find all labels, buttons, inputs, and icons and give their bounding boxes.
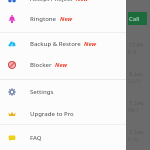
staticText: New: [76, 0, 89, 3]
staticText: 6 d.: [128, 48, 138, 56]
staticText: 12:11: [128, 77, 143, 85]
staticText: 8. Jan.: [129, 70, 145, 77]
staticText: Blocker: [30, 61, 52, 69]
staticText: New: [60, 15, 73, 23]
staticText: New: [84, 40, 97, 48]
staticText: Ringtone: [30, 15, 57, 23]
staticText: Upgrade to Pro: [30, 110, 74, 118]
staticText: 0 m.: [128, 135, 140, 143]
staticText: 3. Jan.: [129, 128, 145, 135]
staticText: Backup & Restore: [30, 40, 81, 48]
button[interactable]: Backup & Restore: [0, 33, 126, 55]
staticText: New: [55, 61, 68, 69]
staticText: 7. Jan.: [129, 99, 145, 106]
button[interactable]: FAQ: [0, 127, 126, 149]
staticText: 08:1: [128, 106, 140, 114]
button[interactable]: Ringtone: [0, 8, 126, 30]
staticText: Settings: [30, 88, 54, 96]
staticText: 17:44: [129, 41, 143, 48]
button[interactable]: Settings: [0, 81, 126, 103]
button[interactable]: Accept / Reject: [0, 0, 126, 10]
staticText: Call: [129, 15, 140, 23]
staticText: Accept / Reject: [30, 0, 73, 3]
staticText: FAQ: [30, 134, 42, 142]
button[interactable]: Blocker: [0, 54, 126, 76]
button[interactable]: Upgrade to Pro: [0, 103, 126, 125]
